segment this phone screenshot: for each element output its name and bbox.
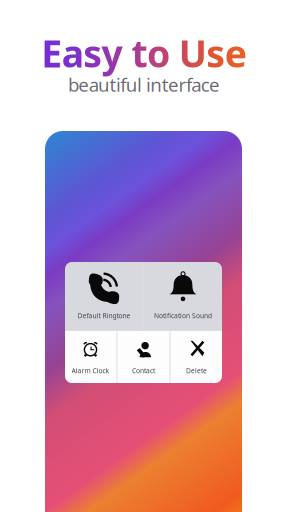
staticText: Alarm Clock (71, 366, 109, 375)
button[interactable]: Notification Sound (144, 262, 222, 330)
button[interactable]: Default Ringtone (65, 262, 143, 330)
button[interactable]: Delete (170, 331, 222, 383)
staticText: Delete (186, 366, 207, 375)
button[interactable]: Contact (117, 331, 169, 383)
staticText: Notification Sound (154, 311, 212, 320)
staticText: Default Ringtone (77, 311, 130, 320)
staticText: Contact (132, 366, 155, 375)
button[interactable]: Alarm Clock (64, 331, 116, 383)
staticText: beautiful interface (68, 72, 220, 97)
